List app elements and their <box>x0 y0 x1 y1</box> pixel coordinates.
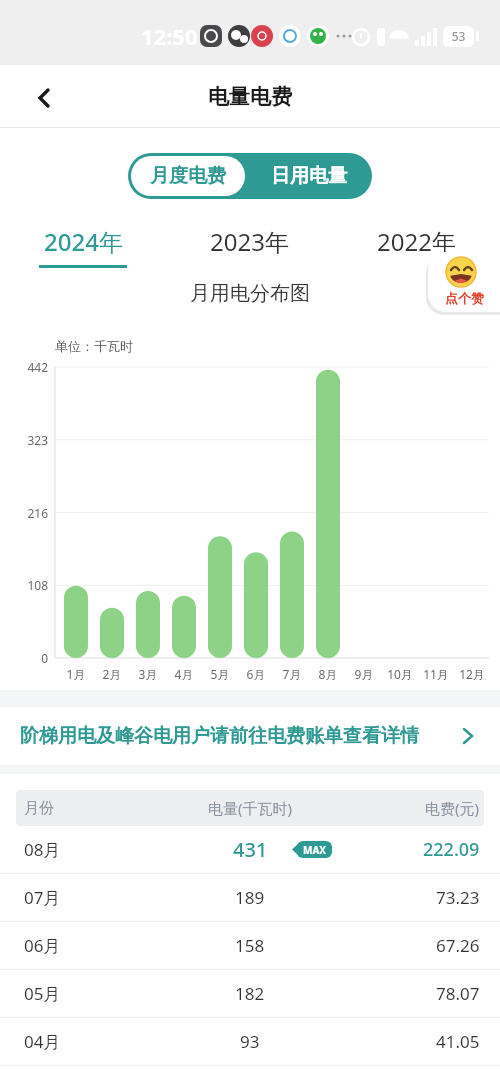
staticText: 93 <box>240 1030 260 1053</box>
staticText: 月份 <box>24 799 54 818</box>
staticText: 222.09 <box>423 837 480 862</box>
staticText: 日用电量 <box>271 164 347 188</box>
staticText: 53 <box>443 28 474 44</box>
staticText: 12月 <box>454 666 490 682</box>
button[interactable]: 08月 <box>0 826 500 874</box>
staticText: 189 <box>235 886 265 909</box>
staticText: MAX <box>303 843 327 857</box>
staticText: 108 <box>8 577 48 593</box>
staticText: 2023年 <box>210 225 289 258</box>
button[interactable]: 04月 <box>0 1018 500 1066</box>
staticText: 73.23 <box>436 886 480 909</box>
staticText: 323 <box>8 432 48 448</box>
button[interactable]: 日用电量 <box>245 153 372 199</box>
staticText: 电量(千瓦时) <box>208 798 293 818</box>
button[interactable]: 06月 <box>0 922 500 970</box>
staticText: 1月 <box>58 666 94 682</box>
button[interactable] <box>24 77 64 117</box>
staticText: 216 <box>8 505 48 521</box>
staticText: 7月 <box>274 666 310 682</box>
staticText: 2024年 <box>44 225 123 258</box>
staticText: 电费(元) <box>425 798 480 818</box>
button[interactable]: 2024年 <box>0 225 166 273</box>
staticText: 0 <box>8 650 48 666</box>
staticText: 04月 <box>24 1030 61 1053</box>
staticText: 08月 <box>24 838 61 861</box>
button[interactable]: 05月 <box>0 970 500 1018</box>
staticText: 05月 <box>24 982 61 1005</box>
staticText: 442 <box>8 359 48 375</box>
staticText: 2022年 <box>377 225 456 258</box>
button[interactable]: 2022年 <box>333 225 500 273</box>
staticText: 07月 <box>24 886 61 909</box>
staticText: 月用电分布图 <box>190 281 310 306</box>
button[interactable]: 07月 <box>0 874 500 922</box>
staticText: 3月 <box>130 666 166 682</box>
button[interactable]: 月度电费 <box>131 156 245 196</box>
staticText: 4月 <box>166 666 202 682</box>
button[interactable]: 点个赞 <box>428 252 500 312</box>
staticText: 2月 <box>94 666 130 682</box>
staticText: 67.26 <box>436 934 480 957</box>
staticText: 41.05 <box>436 1030 480 1053</box>
staticText: 阶梯用电及峰谷电用户请前往电费账单查看详情 <box>20 724 419 748</box>
staticText: 5月 <box>202 666 238 682</box>
button[interactable]: 阶梯用电及峰谷电用户请前往电费账单查看详情 <box>0 707 500 765</box>
staticText: 6月 <box>238 666 274 682</box>
staticText: 9月 <box>346 666 382 682</box>
staticText: 06月 <box>24 934 61 957</box>
staticText: 8月 <box>310 666 346 682</box>
staticText: 11月 <box>418 666 454 682</box>
staticText: 月度电费 <box>150 164 226 188</box>
button[interactable]: 2023年 <box>166 225 333 273</box>
staticText: 12:50 <box>141 21 198 51</box>
staticText: 182 <box>235 982 265 1005</box>
staticText: 单位：千瓦时 <box>55 338 133 354</box>
staticText: 10月 <box>382 666 418 682</box>
staticText: 431 <box>233 836 268 863</box>
staticText: 点个赞 <box>445 290 484 306</box>
staticText: 电量电费 <box>208 84 292 110</box>
staticText: 158 <box>235 934 265 957</box>
staticText: 78.07 <box>436 982 480 1005</box>
